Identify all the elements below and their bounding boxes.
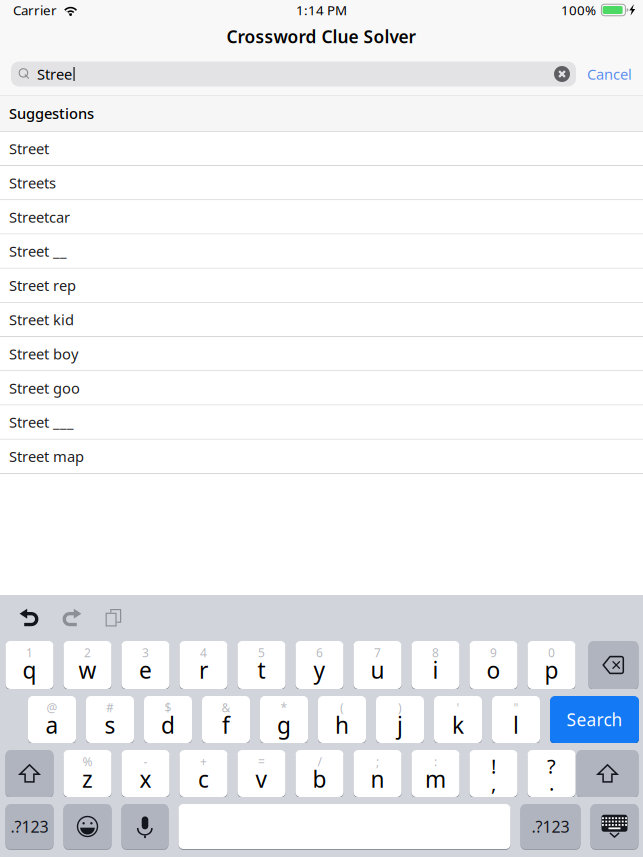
staticText: Street kid bbox=[9, 310, 74, 329]
staticText: m bbox=[425, 764, 446, 794]
button[interactable]: : bbox=[411, 750, 459, 797]
staticText: 1:14 PM bbox=[296, 1, 347, 19]
button[interactable]: @ bbox=[28, 696, 76, 743]
button[interactable]: Streetcar bbox=[0, 200, 643, 234]
staticText: ? bbox=[547, 753, 556, 779]
button[interactable]: ) bbox=[376, 696, 424, 743]
staticText: t bbox=[257, 655, 265, 685]
staticText: ) bbox=[398, 699, 402, 715]
button[interactable]: 3 bbox=[121, 641, 169, 689]
button[interactable]: Paste bbox=[92, 603, 134, 633]
staticText: Streetcar bbox=[9, 207, 70, 227]
button[interactable]: ? bbox=[527, 750, 575, 797]
button[interactable]: ( bbox=[318, 696, 366, 743]
staticText: n bbox=[370, 764, 384, 794]
button[interactable]: Cancel bbox=[576, 61, 643, 86]
button[interactable]: 0 bbox=[527, 641, 575, 689]
button[interactable]: Emoji bbox=[63, 804, 111, 849]
button[interactable]: 5 bbox=[237, 641, 285, 689]
staticText: b bbox=[312, 764, 326, 794]
staticText: $ bbox=[164, 699, 171, 715]
button[interactable]: % bbox=[63, 750, 111, 797]
button[interactable]: - bbox=[121, 750, 169, 797]
staticText: 0 bbox=[548, 644, 555, 660]
button[interactable]: 2 bbox=[63, 641, 111, 689]
staticText: Street ___ bbox=[9, 412, 74, 432]
button[interactable]: Search bbox=[550, 696, 639, 743]
button[interactable]: Street kid bbox=[0, 303, 643, 337]
button[interactable]: + bbox=[179, 750, 227, 797]
staticText: k bbox=[452, 710, 464, 740]
button[interactable]: ' bbox=[434, 696, 482, 743]
staticText: w bbox=[78, 655, 96, 685]
button[interactable]: Undo bbox=[8, 603, 50, 633]
button[interactable]: Street map bbox=[0, 440, 643, 474]
button[interactable]: Dictate bbox=[121, 804, 168, 849]
button[interactable]: * bbox=[260, 696, 308, 743]
button[interactable]: ; bbox=[353, 750, 401, 797]
button[interactable]: Stree bbox=[11, 61, 576, 86]
button[interactable]: = bbox=[237, 750, 285, 797]
button[interactable]: Street boy bbox=[0, 337, 643, 371]
staticText: Street map bbox=[9, 447, 84, 466]
staticText: z bbox=[82, 764, 93, 794]
staticText: e bbox=[139, 655, 152, 685]
staticText: @ bbox=[46, 699, 57, 715]
button[interactable]: Street bbox=[0, 132, 643, 166]
button[interactable]: Street ___ bbox=[0, 405, 643, 440]
staticText: / bbox=[317, 753, 321, 769]
staticText: " bbox=[513, 699, 518, 715]
button[interactable]: / bbox=[295, 750, 343, 797]
button[interactable]: 8 bbox=[411, 641, 459, 689]
button[interactable]: Numbers bbox=[520, 804, 580, 849]
button[interactable]: Street goo bbox=[0, 371, 643, 405]
button[interactable]: # bbox=[86, 696, 134, 743]
button[interactable]: 1 bbox=[5, 641, 53, 689]
staticText: Street rep bbox=[9, 276, 76, 295]
staticText: 4 bbox=[200, 644, 207, 660]
staticText: s bbox=[104, 710, 115, 740]
staticText: Street goo bbox=[9, 378, 80, 398]
button[interactable]: 6 bbox=[295, 641, 343, 689]
staticText: o bbox=[486, 655, 500, 685]
staticText: % bbox=[82, 753, 92, 769]
button[interactable]: Hide Keyboard bbox=[590, 804, 638, 849]
button[interactable]: 9 bbox=[469, 641, 517, 689]
staticText: 2 bbox=[84, 644, 91, 660]
button[interactable]: Streets bbox=[0, 166, 643, 200]
staticText: Street boy bbox=[9, 344, 78, 363]
button[interactable]: space bbox=[178, 804, 510, 849]
staticText: Street bbox=[9, 139, 49, 158]
staticText: Search bbox=[566, 708, 622, 731]
staticText: Carrier bbox=[13, 1, 57, 19]
button[interactable]: 4 bbox=[179, 641, 227, 689]
staticText: Streets bbox=[9, 173, 56, 192]
button[interactable]: ! bbox=[469, 750, 517, 797]
button[interactable]: Shift bbox=[5, 750, 53, 797]
button[interactable]: $ bbox=[144, 696, 192, 743]
staticText: 8 bbox=[432, 644, 439, 660]
staticText: v bbox=[255, 764, 267, 794]
button[interactable]: Delete bbox=[588, 641, 638, 689]
staticText: l bbox=[513, 710, 519, 740]
button[interactable]: Redo bbox=[50, 603, 92, 633]
staticText: 6 bbox=[316, 644, 323, 660]
button[interactable]: 7 bbox=[353, 641, 401, 689]
staticText: i bbox=[432, 655, 438, 685]
button[interactable]: & bbox=[202, 696, 250, 743]
button[interactable]: Street __ bbox=[0, 234, 643, 269]
staticText: Street __ bbox=[9, 241, 67, 261]
button[interactable]: Shift bbox=[576, 750, 638, 797]
staticText: 5 bbox=[258, 644, 265, 660]
staticText: 9 bbox=[490, 644, 497, 660]
staticText: 1 bbox=[26, 644, 33, 660]
staticText: .?123 bbox=[10, 816, 48, 837]
button[interactable]: Numbers bbox=[5, 804, 53, 849]
staticText: 3 bbox=[142, 644, 149, 660]
button[interactable]: Street rep bbox=[0, 269, 643, 303]
staticText: q bbox=[22, 655, 36, 685]
staticText: f bbox=[222, 710, 230, 740]
button[interactable]: " bbox=[492, 696, 540, 743]
staticText: h bbox=[335, 710, 349, 740]
staticText: + bbox=[200, 753, 207, 769]
